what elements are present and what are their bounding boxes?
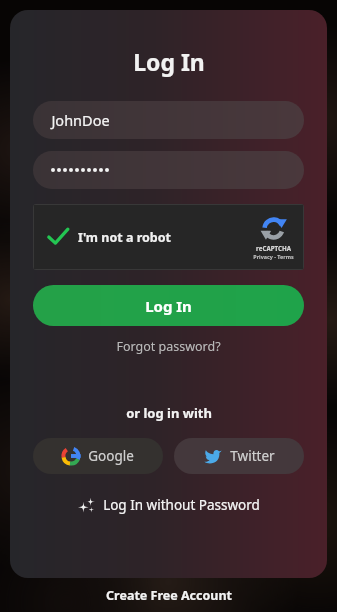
button[interactable]: Forgot password? [108, 335, 229, 358]
button[interactable]: I'm not a robot [33, 204, 304, 270]
staticText: Log In [145, 296, 192, 316]
staticText: JohnDoe [51, 110, 110, 130]
button[interactable] [33, 151, 304, 189]
button[interactable]: Log In [33, 285, 304, 326]
staticText: Log In without Password [103, 496, 260, 514]
staticText: I'm not a robot [78, 229, 171, 246]
button[interactable]: Twitter [174, 438, 304, 474]
staticText: or log in with [126, 404, 212, 422]
staticText: Log In [133, 46, 205, 77]
staticText: Google [88, 447, 134, 465]
staticText: Create Free Account [106, 587, 232, 604]
staticText: reCAPTCHA [256, 244, 291, 252]
staticText: Privacy - Terms [253, 253, 294, 260]
button[interactable]: Google [33, 438, 163, 474]
button[interactable]: JohnDoe [33, 101, 304, 139]
button[interactable]: Create Free Account [0, 578, 337, 612]
staticText: Twitter [230, 447, 275, 465]
staticText: Forgot password? [116, 338, 221, 355]
button[interactable]: Log In without Password [68, 492, 270, 518]
